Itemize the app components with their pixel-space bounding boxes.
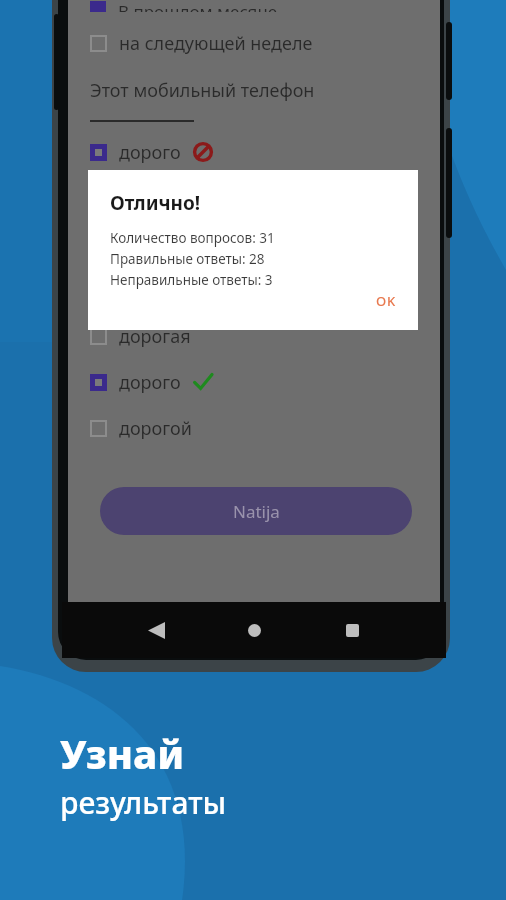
staticText: В прошлом месяце bbox=[118, 0, 278, 12]
staticText: OK bbox=[375, 292, 396, 310]
button[interactable]: Home bbox=[232, 608, 276, 652]
staticText: Этот мобильный телефон bbox=[90, 78, 315, 103]
staticText: Отлично! bbox=[110, 190, 201, 216]
staticText: Узнай bbox=[60, 726, 185, 780]
staticText: на следующей неделе bbox=[119, 31, 313, 56]
button[interactable]: Natija bbox=[100, 487, 412, 535]
button[interactable]: дорого bbox=[90, 135, 426, 169]
staticText: Количество вопросов: 31 bbox=[110, 229, 275, 247]
button[interactable]: Back bbox=[134, 608, 178, 652]
staticText: Неправильные ответы: 3 bbox=[110, 271, 273, 289]
staticText: дорого bbox=[119, 370, 181, 395]
button[interactable]: дорогая bbox=[90, 319, 426, 353]
button[interactable]: В прошлом месяце bbox=[90, 0, 426, 12]
button[interactable]: OK bbox=[363, 286, 408, 316]
staticText: дорого bbox=[119, 140, 181, 165]
staticText: результаты bbox=[60, 782, 227, 823]
staticText: Natija bbox=[233, 500, 280, 523]
staticText: Правильные ответы: 28 bbox=[110, 250, 265, 268]
staticText: дорогая bbox=[119, 324, 191, 349]
button[interactable]: на следующей неделе bbox=[90, 26, 426, 60]
button[interactable]: дорогой bbox=[90, 411, 426, 445]
button[interactable]: Recent apps bbox=[330, 608, 374, 652]
button[interactable]: дорого bbox=[90, 365, 426, 399]
staticText: дорогой bbox=[119, 416, 192, 441]
